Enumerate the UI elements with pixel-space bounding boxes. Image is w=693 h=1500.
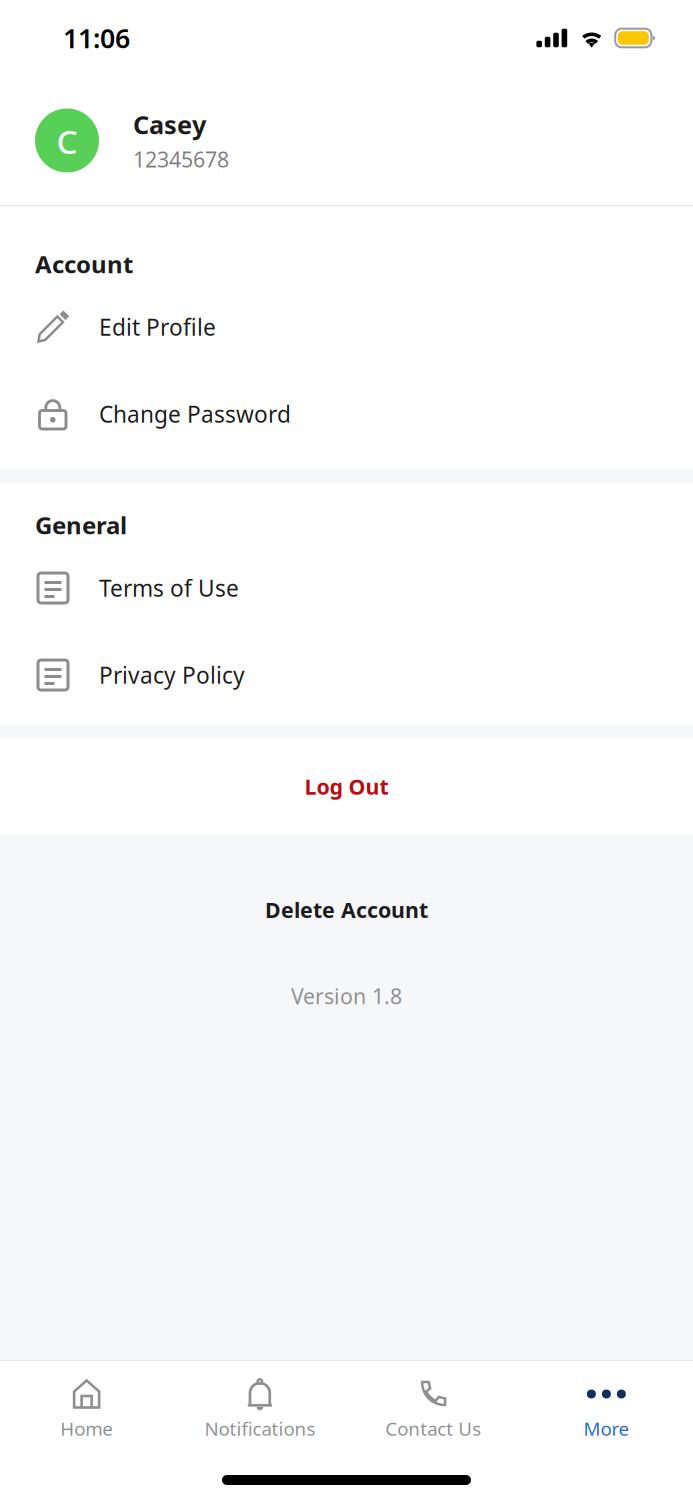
staticText: Casey xyxy=(133,107,206,141)
staticText: Contact Us xyxy=(385,1416,481,1441)
button[interactable]: More xyxy=(520,1361,693,1451)
staticText: Terms of Use xyxy=(99,573,239,603)
staticText: Account xyxy=(35,248,133,280)
staticText: Log Out xyxy=(304,772,388,801)
staticText: Delete Account xyxy=(265,895,428,924)
staticText: More xyxy=(583,1416,629,1441)
staticText: Version 1.8 xyxy=(291,982,402,1010)
staticText: Privacy Policy xyxy=(99,660,245,690)
button[interactable]: Change Password xyxy=(0,370,693,457)
button[interactable]: Delete Account xyxy=(243,834,450,934)
staticText: 11:06 xyxy=(63,20,130,56)
staticText: General xyxy=(35,509,127,541)
button[interactable]: Edit Profile xyxy=(0,283,693,370)
staticText: Home xyxy=(60,1416,113,1441)
button[interactable]: Home xyxy=(0,1361,173,1451)
staticText: Notifications xyxy=(204,1416,315,1441)
staticText: Change Password xyxy=(99,399,291,429)
button[interactable]: Contact Us xyxy=(346,1361,520,1451)
staticText: Edit Profile xyxy=(99,312,216,342)
staticText: 12345678 xyxy=(133,145,229,173)
button[interactable]: Terms of Use xyxy=(0,544,693,631)
button[interactable]: C xyxy=(0,76,693,205)
button[interactable]: Log Out xyxy=(0,738,693,834)
button[interactable]: Notifications xyxy=(173,1361,346,1451)
button[interactable]: Privacy Policy xyxy=(0,631,693,718)
staticText: C xyxy=(56,119,77,163)
